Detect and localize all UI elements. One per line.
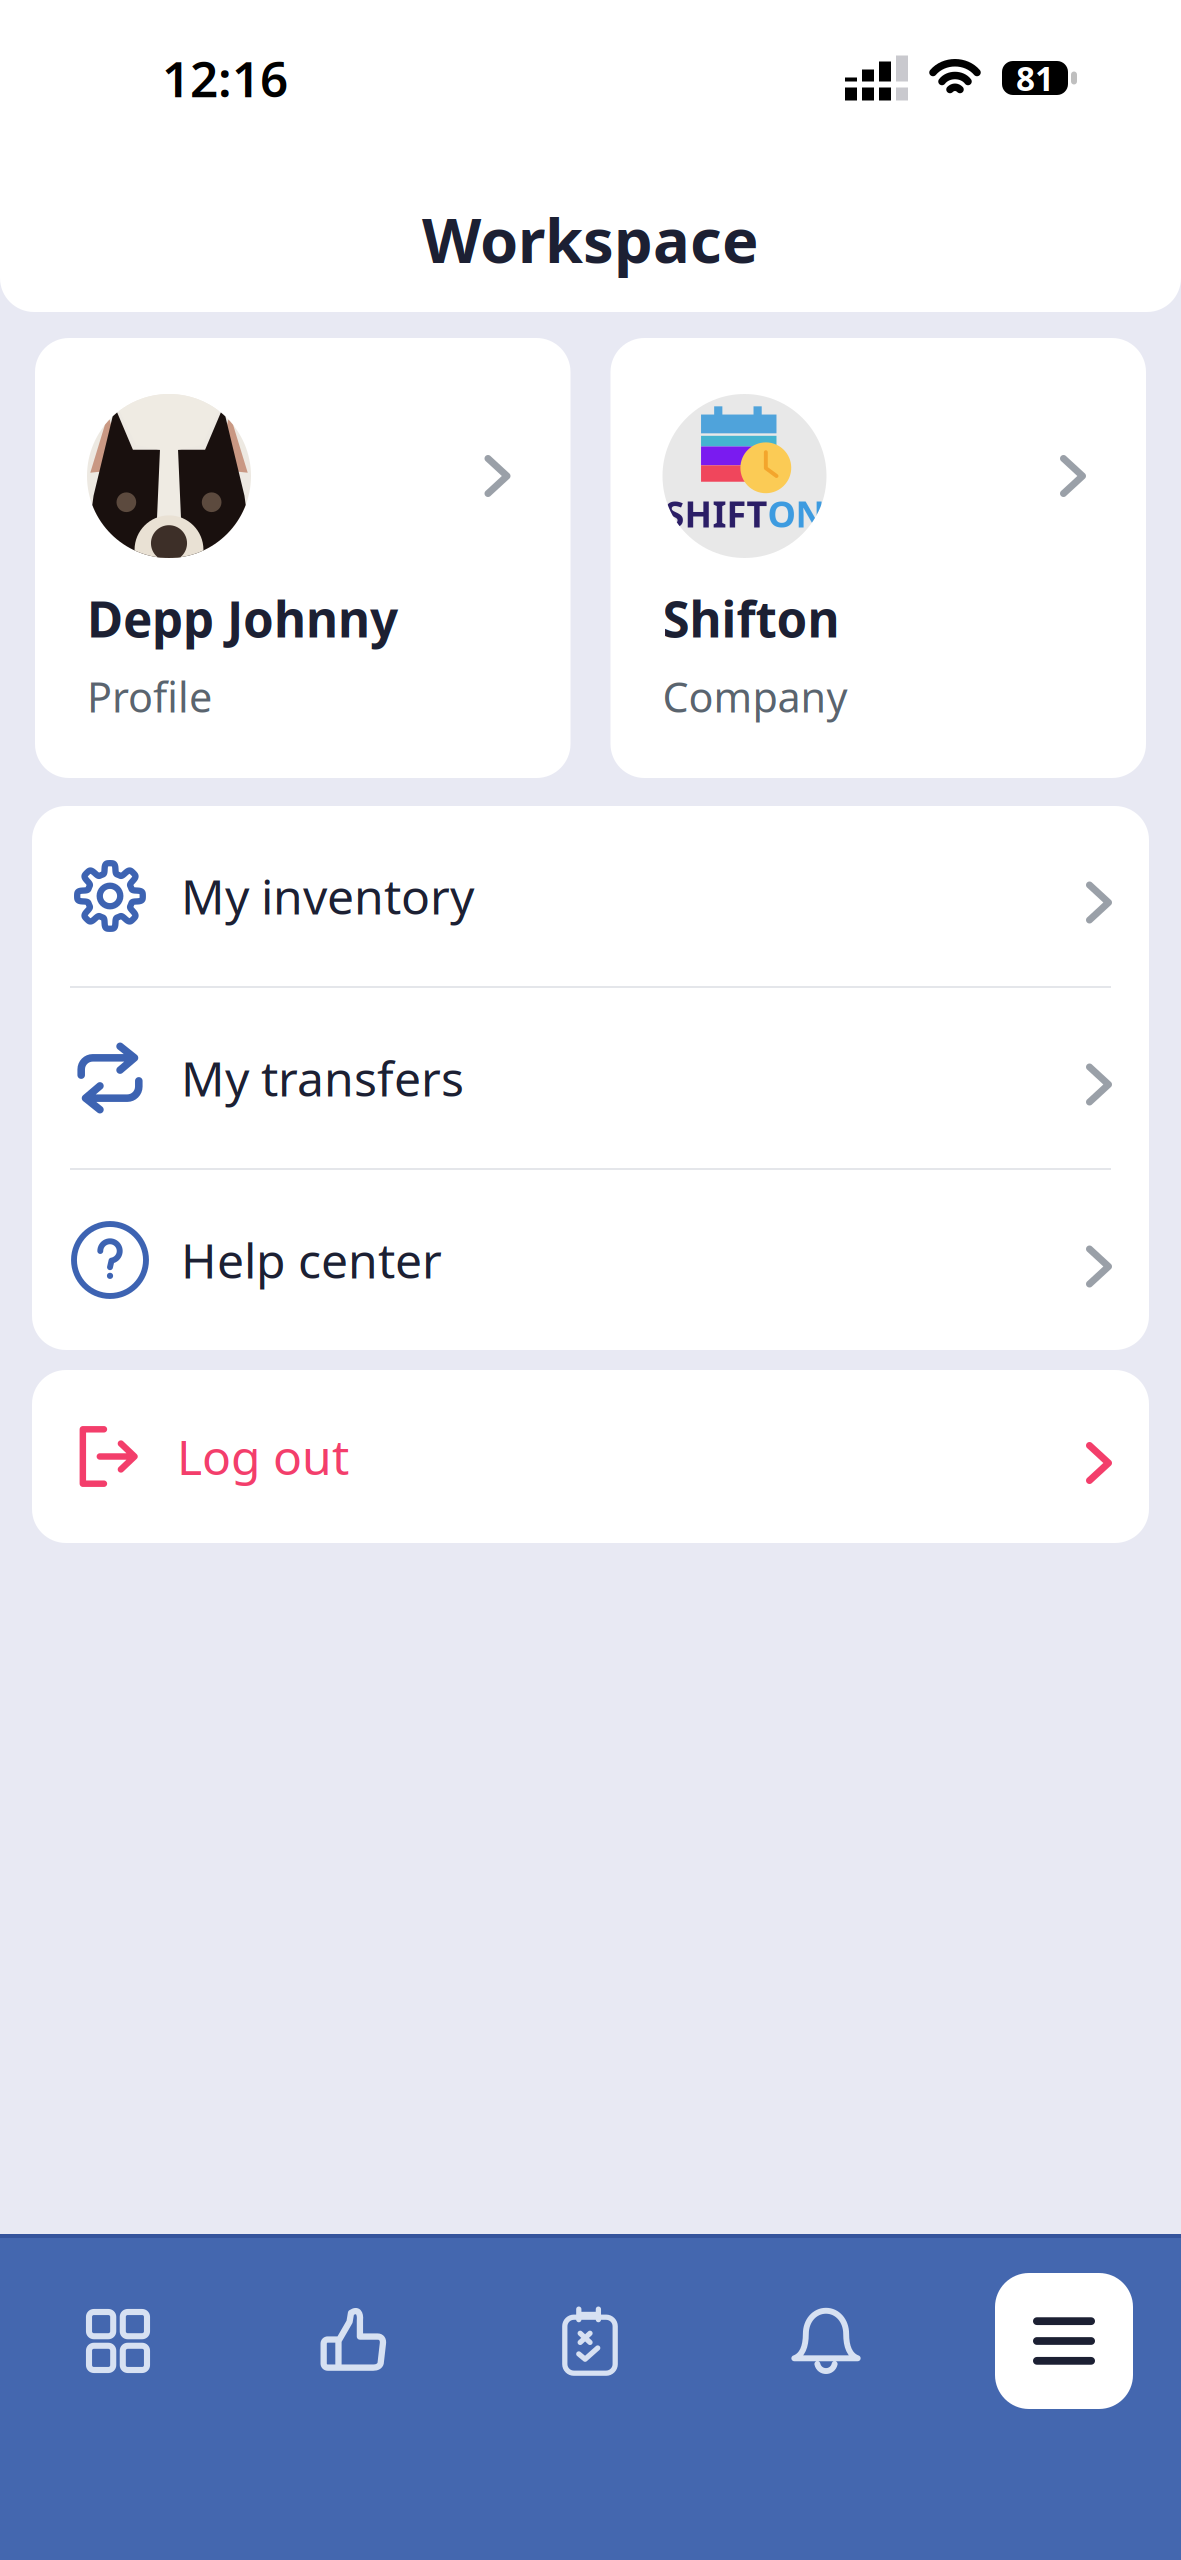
staticText: Shifton bbox=[662, 586, 839, 651]
staticText: Log out bbox=[177, 1425, 349, 1488]
staticText: ON bbox=[767, 490, 824, 537]
button[interactable]: My transfers bbox=[32, 988, 1149, 1168]
button[interactable]: Menu bbox=[995, 2273, 1133, 2409]
staticText: Profile bbox=[87, 669, 212, 724]
button[interactable]: Notifications bbox=[708, 2266, 944, 2416]
button[interactable]: Likes bbox=[236, 2266, 472, 2416]
staticText: Workspace bbox=[422, 199, 759, 280]
button[interactable]: Depp Johnny bbox=[35, 338, 570, 778]
staticText: My inventory bbox=[181, 864, 474, 928]
staticText: Company bbox=[662, 669, 847, 724]
staticText: Help center bbox=[181, 1228, 442, 1292]
staticText: 81 bbox=[1016, 56, 1054, 100]
button[interactable]: Tasks bbox=[472, 2266, 708, 2416]
button[interactable]: Help center bbox=[32, 1170, 1149, 1350]
staticText: SHIFT bbox=[664, 490, 767, 537]
button[interactable]: My inventory bbox=[32, 806, 1149, 986]
staticText: Depp Johnny bbox=[87, 586, 398, 651]
staticText: My transfers bbox=[181, 1046, 464, 1110]
button[interactable]: Dashboard bbox=[0, 2266, 236, 2416]
button[interactable]: SHIFT bbox=[610, 338, 1146, 778]
button[interactable]: Log out bbox=[32, 1370, 1149, 1543]
staticText: 12:16 bbox=[162, 45, 288, 111]
